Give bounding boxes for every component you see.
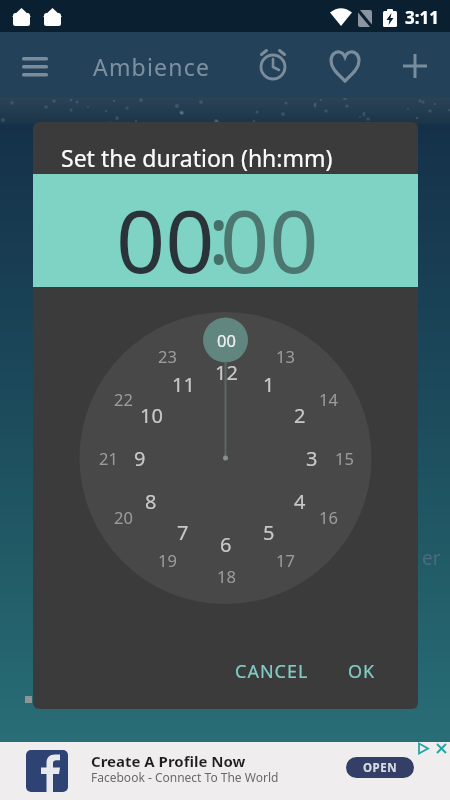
button[interactable] (252, 45, 294, 87)
staticText: 9 (134, 445, 146, 471)
staticText: 4 (294, 488, 306, 514)
staticText: 7 (177, 519, 189, 545)
staticText: 22 (114, 388, 133, 410)
staticText: Create A Profile Now (91, 751, 246, 769)
staticText: er (422, 545, 441, 569)
staticText: 8 (145, 488, 157, 514)
staticText: 3:11 (405, 6, 439, 29)
button[interactable] (0, 742, 450, 800)
staticText: 17 (276, 549, 295, 571)
staticText: Ambience (93, 51, 211, 82)
staticText: Set the duration (hh:mm) (61, 142, 333, 172)
staticText: 10 (140, 402, 163, 428)
button[interactable] (327, 46, 365, 86)
staticText: 00 (116, 181, 215, 291)
button[interactable]: 00 (95, 181, 235, 291)
staticText: 00 (220, 181, 319, 291)
staticText: : (208, 178, 230, 287)
staticText: 11 (172, 371, 195, 397)
staticText: 5 (263, 519, 275, 545)
button[interactable] (12, 47, 58, 87)
staticText: 3 (306, 445, 318, 471)
staticText: 20 (114, 506, 133, 528)
button[interactable]: CANCEL (222, 648, 322, 694)
staticText: 00 (217, 329, 236, 351)
staticText: 14 (319, 388, 338, 410)
staticText: 6 (220, 531, 232, 557)
staticText: 23 (158, 345, 177, 367)
staticText: OPEN (363, 760, 398, 776)
staticText: 21 (99, 447, 118, 469)
button[interactable]: OK (332, 648, 392, 694)
staticText: 12 (215, 359, 238, 385)
staticText: 2 (294, 402, 306, 428)
staticText: Facebook - Connect To The World (91, 769, 279, 785)
staticText: OK (348, 659, 376, 684)
button[interactable]: 00 (206, 328, 246, 352)
button[interactable] (395, 46, 435, 86)
staticText: 16 (319, 506, 338, 528)
button[interactable]: 00 (199, 181, 339, 291)
staticText: CANCEL (235, 659, 309, 684)
staticText: 15 (335, 447, 354, 469)
staticText: 1 (263, 371, 275, 397)
staticText: 13 (276, 345, 295, 367)
staticText: 18 (217, 565, 236, 587)
staticText: 19 (158, 549, 177, 571)
button[interactable]: OPEN (346, 757, 414, 778)
